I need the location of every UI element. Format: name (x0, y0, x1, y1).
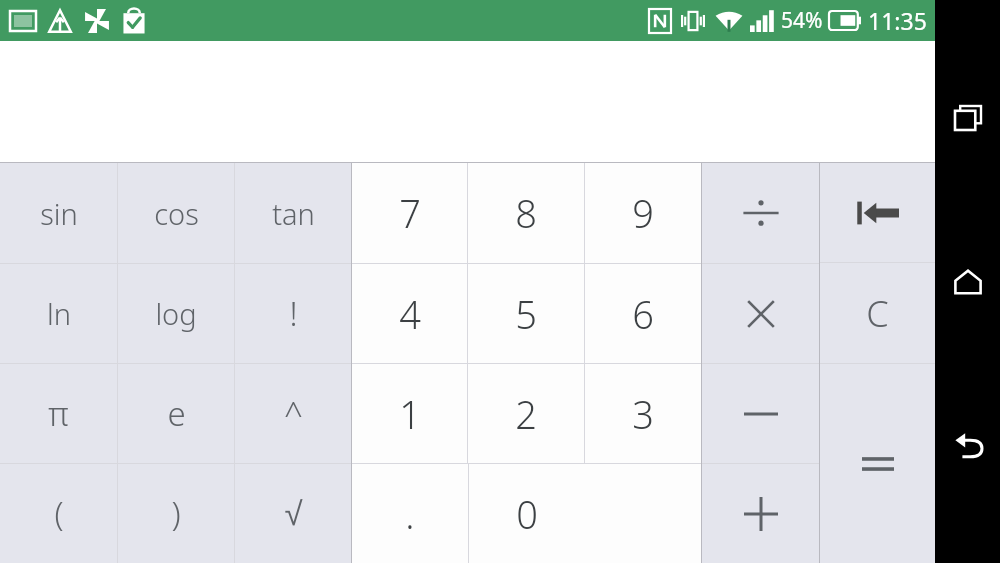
button[interactable]: Recents (940, 90, 996, 146)
staticText: ln (47, 294, 71, 333)
staticText: 9 (632, 187, 654, 239)
button[interactable]: ) (118, 464, 234, 563)
button[interactable]: 6 (585, 264, 701, 363)
staticText: 3 (632, 388, 654, 440)
button[interactable]: Plus (702, 464, 819, 563)
button[interactable]: Equals (820, 364, 935, 563)
staticText: ! (289, 291, 298, 336)
staticText: cos (154, 194, 199, 233)
button[interactable]: 7 (352, 163, 467, 263)
staticText: 11:35 (868, 5, 927, 36)
button[interactable]: 4 (352, 264, 467, 363)
staticText: ^ (284, 391, 303, 436)
staticText: 6 (632, 288, 654, 340)
staticText: . (405, 488, 415, 540)
staticText: √ (284, 495, 303, 532)
button[interactable]: 3 (585, 364, 701, 463)
button[interactable]: Divide (702, 163, 819, 263)
button[interactable]: 5 (468, 264, 584, 363)
button[interactable]: Back (940, 417, 996, 473)
button[interactable]: π (0, 364, 117, 463)
staticText: 5 (515, 288, 537, 340)
button[interactable]: Backspace (820, 163, 935, 262)
staticText: e (167, 391, 186, 436)
staticText: log (155, 294, 197, 333)
button[interactable]: 9 (585, 163, 701, 263)
staticText: 0 (516, 488, 538, 540)
button[interactable]: ( (0, 464, 117, 563)
button[interactable]: e (118, 364, 234, 463)
staticText: 2 (515, 388, 537, 440)
button[interactable]: tan (235, 163, 351, 263)
staticText: sin (40, 194, 78, 233)
staticText: 1 (399, 388, 421, 440)
button[interactable]: log (118, 264, 234, 363)
button[interactable]: 8 (468, 163, 584, 263)
staticText: 7 (399, 187, 421, 239)
staticText: tan (272, 194, 315, 233)
button[interactable]: cos (118, 163, 234, 263)
button[interactable]: C (820, 263, 935, 363)
staticText: ( (54, 491, 64, 536)
button[interactable]: Home (940, 254, 996, 310)
button[interactable]: ln (0, 264, 117, 363)
button[interactable]: √ (235, 464, 351, 563)
staticText: 8 (515, 187, 537, 239)
button[interactable]: 0 (469, 464, 701, 563)
button[interactable]: sin (0, 163, 117, 263)
button[interactable]: 1 (352, 364, 467, 463)
staticText: π (48, 391, 69, 436)
button[interactable]: Minus (702, 364, 819, 463)
button[interactable]: ^ (235, 364, 351, 463)
staticText: 4 (399, 288, 421, 340)
button[interactable]: ! (235, 264, 351, 363)
button[interactable]: Multiply (702, 264, 819, 363)
staticText: 54% (781, 6, 823, 35)
staticText: C (866, 289, 889, 338)
button[interactable]: 2 (468, 364, 584, 463)
button[interactable]: . (352, 464, 468, 563)
staticText: ) (171, 491, 181, 536)
